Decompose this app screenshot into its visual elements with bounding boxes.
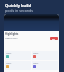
button[interactable]: Join — [50, 37, 58, 40]
staticText: Highlights — [5, 32, 19, 36]
button[interactable]: Weekly — [32, 51, 58, 60]
staticText: Join — [52, 38, 56, 40]
button[interactable]: Weekly — [5, 61, 31, 70]
button[interactable]: Weekly — [5, 51, 31, 60]
staticText: Weekly — [33, 52, 39, 54]
staticText: Quickly build — [5, 3, 32, 8]
button[interactable]: Weekly — [32, 61, 58, 70]
staticText: Weekly — [6, 52, 12, 54]
staticText: Weekly — [6, 62, 12, 64]
staticText: pools in seconds — [5, 8, 34, 13]
staticText: Weekly picks — [5, 37, 18, 40]
staticText: Weekly — [33, 62, 39, 64]
